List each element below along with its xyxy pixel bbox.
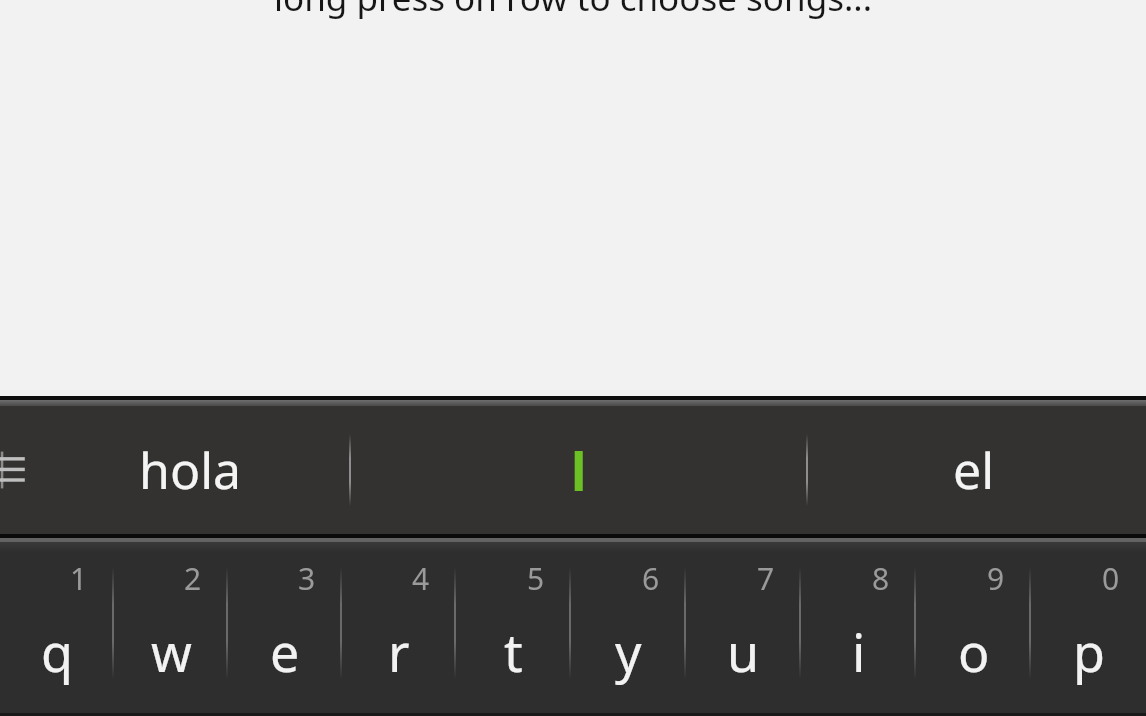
staticText: 7 <box>757 558 775 599</box>
button[interactable]: 0 <box>1031 542 1146 716</box>
button[interactable]: hola <box>40 406 349 534</box>
staticText: 0 <box>1102 558 1120 599</box>
button[interactable]: l <box>351 406 806 534</box>
staticText: 3 <box>298 558 316 599</box>
staticText: 4 <box>412 558 430 599</box>
staticText: 9 <box>987 558 1005 599</box>
staticText: p <box>1073 616 1105 687</box>
button[interactable]: 8 <box>801 542 916 716</box>
button[interactable]: 2 <box>114 542 228 716</box>
staticText: 5 <box>527 558 545 599</box>
button[interactable]: 6 <box>571 542 686 716</box>
staticText: o <box>958 616 990 687</box>
button[interactable]: 5 <box>456 542 571 716</box>
staticText: hola <box>139 436 242 504</box>
button[interactable]: Keyboard options menu <box>0 406 40 534</box>
staticText: w <box>151 616 192 687</box>
staticText: 6 <box>642 558 660 599</box>
button[interactable]: 3 <box>228 542 342 716</box>
staticText: 2 <box>184 558 202 599</box>
staticText: long press on row to choose songs... <box>0 0 1146 22</box>
staticText: l <box>571 435 587 506</box>
staticText: e <box>270 616 300 687</box>
staticText: q <box>41 616 73 687</box>
staticText: r <box>388 616 410 687</box>
staticText: 8 <box>872 558 890 599</box>
button[interactable]: 4 <box>342 542 456 716</box>
staticText: el <box>953 436 995 504</box>
staticText: t <box>504 616 523 687</box>
button[interactable]: 7 <box>686 542 801 716</box>
staticText: 1 <box>70 558 88 599</box>
staticText: y <box>615 616 642 687</box>
staticText: u <box>727 616 760 687</box>
button[interactable]: 1 <box>0 542 114 716</box>
button[interactable]: 9 <box>916 542 1031 716</box>
staticText: i <box>852 616 866 687</box>
button[interactable]: el <box>808 406 1146 534</box>
